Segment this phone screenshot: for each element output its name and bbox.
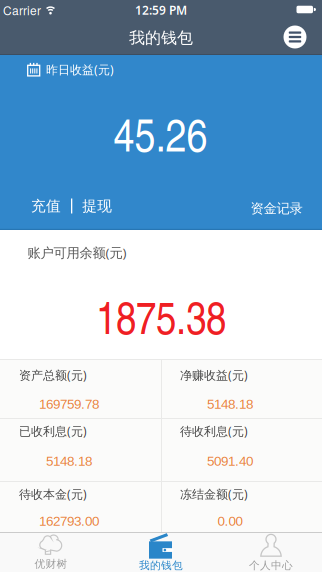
staticText: 充值 [31,197,61,215]
staticText: 净赚收益(元) [180,367,248,383]
staticText: 待收利息(元) [180,423,248,439]
staticText: 我的钱包 [129,28,193,48]
button[interactable]: 提现 [82,197,112,215]
button[interactable]: 资金记录 [250,200,302,217]
button[interactable]: 充值 [31,197,61,215]
staticText: 0.00 [217,513,242,528]
staticText: 个人中心 [249,559,293,572]
button[interactable]: 我的钱包 [111,532,211,572]
staticText: 待收本金(元) [19,486,87,502]
staticText: 提现 [82,197,112,215]
staticText: 冻结金额(元) [180,486,248,502]
staticText: Carrier [3,1,41,19]
staticText: 优财树 [34,557,67,570]
button[interactable]: Menu [283,25,306,48]
staticText: 我的钱包 [139,559,183,572]
staticText: 169759.78 [39,396,99,411]
staticText: 1875.38 [96,285,226,347]
staticText: 昨日收益(元) [46,61,114,77]
button[interactable]: 优财树 [1,532,101,572]
staticText: 12:59 PM [135,2,187,18]
staticText: 5148.18 [207,396,253,411]
staticText: 5148.18 [46,453,92,468]
staticText: 已收利息(元) [19,423,87,439]
button[interactable]: 个人中心 [221,532,321,572]
staticText: 5091.40 [207,453,253,468]
staticText: 账户可用余额(元) [27,244,126,261]
staticText: 45.26 [113,101,207,165]
staticText: 资产总额(元) [19,367,87,383]
staticText: 资金记录 [250,200,302,217]
staticText: 162793.00 [39,513,99,528]
